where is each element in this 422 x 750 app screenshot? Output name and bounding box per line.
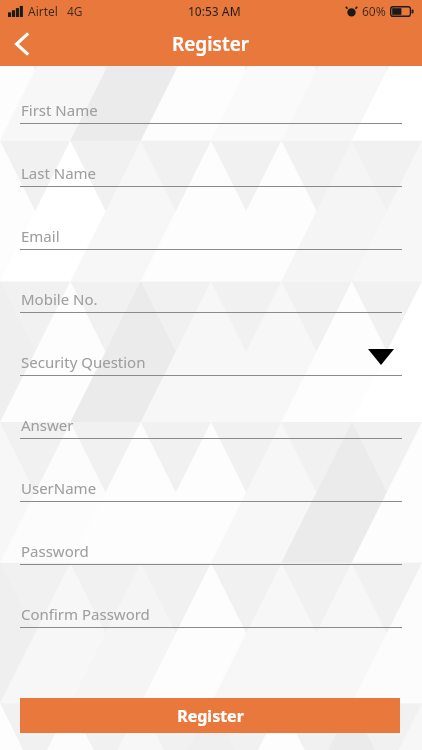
staticText: Register [172,31,250,57]
staticText: Answer [21,415,74,435]
staticText: Password [21,541,89,561]
button[interactable]: Password [0,536,422,599]
button[interactable]: Answer [0,410,422,473]
button[interactable]: Confirm Password [0,599,422,662]
staticText: Security Question [21,352,146,372]
staticText: Register [177,705,244,727]
button[interactable]: Security Question [0,347,422,410]
staticText: Confirm Password [21,604,150,624]
button[interactable]: Email [0,221,422,284]
staticText: Airtel [28,3,58,19]
button[interactable]: UserName [0,473,422,536]
button[interactable]: First Name [0,95,422,158]
staticText: Email [21,226,60,246]
button[interactable]: Register [20,698,400,733]
button[interactable]: Last Name [0,158,422,221]
staticText: Mobile No. [21,289,98,309]
staticText: 60% [362,3,386,19]
staticText: UserName [21,478,97,498]
button[interactable]: Back [0,22,44,66]
button[interactable]: Mobile No. [0,284,422,347]
other: Open security question list [368,349,394,365]
staticText: Last Name [21,163,97,183]
staticText: First Name [21,100,98,120]
staticText: 4G [67,3,83,19]
staticText: 10:53 AM [188,3,241,19]
